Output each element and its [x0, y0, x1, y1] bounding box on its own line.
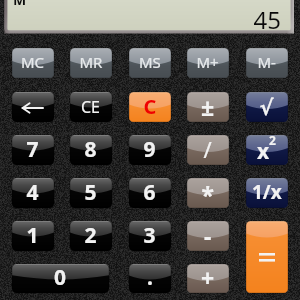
button[interactable] — [12, 264, 109, 293]
button[interactable] — [187, 264, 229, 293]
button[interactable] — [12, 48, 54, 78]
button[interactable] — [12, 135, 54, 165]
button[interactable] — [129, 48, 171, 78]
button[interactable] — [12, 178, 54, 208]
button[interactable]: Square — [246, 135, 288, 165]
button[interactable] — [187, 221, 229, 251]
button[interactable] — [246, 178, 288, 208]
button[interactable]: Equals — [246, 221, 288, 293]
button[interactable] — [129, 135, 171, 165]
button[interactable]: Backspace — [12, 92, 54, 122]
button[interactable] — [129, 92, 171, 122]
button[interactable] — [187, 135, 229, 165]
button[interactable] — [70, 178, 112, 208]
button[interactable] — [129, 221, 171, 251]
button[interactable] — [187, 92, 229, 122]
button[interactable] — [246, 48, 288, 78]
button[interactable] — [246, 92, 288, 122]
button[interactable] — [70, 92, 112, 122]
button[interactable] — [129, 178, 171, 208]
button[interactable] — [70, 48, 112, 78]
button[interactable] — [12, 221, 54, 251]
button[interactable] — [187, 178, 229, 208]
button[interactable] — [187, 48, 229, 78]
button[interactable] — [70, 221, 112, 251]
button[interactable] — [70, 135, 112, 165]
button[interactable] — [129, 264, 171, 293]
